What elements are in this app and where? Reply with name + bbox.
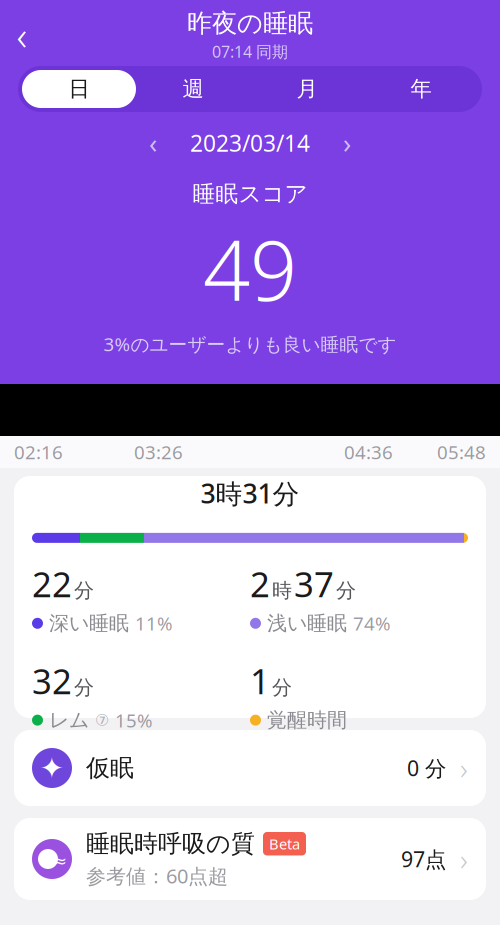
staticText: 浅い睡眠 xyxy=(267,611,347,636)
button[interactable]: ≈ xyxy=(14,818,486,900)
staticText: レム xyxy=(49,708,89,732)
staticText: 睡眠スコア xyxy=(192,180,307,208)
staticText: 深い睡眠 xyxy=(49,611,129,636)
staticText: 時 xyxy=(272,578,292,603)
staticText: 02:16 xyxy=(14,440,63,464)
staticText: 分 xyxy=(74,675,94,700)
staticText: 睡眠時呼吸の質 xyxy=(86,829,255,858)
staticText: › xyxy=(460,748,468,787)
staticText: ‹ xyxy=(149,125,157,161)
staticText: 年 xyxy=(410,76,431,102)
staticText: 3時31分 xyxy=(200,475,299,511)
staticText: ‹ xyxy=(16,8,27,61)
staticText: 分 xyxy=(336,578,356,603)
button[interactable]: 前の日 xyxy=(136,126,170,160)
staticText: › xyxy=(343,125,351,161)
button[interactable]: 月 xyxy=(250,70,364,108)
staticText: 03:26 xyxy=(134,440,183,464)
staticText: 05:48 xyxy=(437,440,486,464)
staticText: ⑦ xyxy=(95,711,109,729)
staticText: 日 xyxy=(68,76,89,102)
button[interactable]: 次の日 xyxy=(330,126,364,160)
staticText: 覚醒時間 xyxy=(267,708,347,732)
staticText: 月 xyxy=(296,76,317,102)
staticText: 2023/03/14 xyxy=(190,128,310,158)
staticText: 49 xyxy=(203,214,297,324)
staticText: 分 xyxy=(272,675,292,700)
staticText: 仮眠 xyxy=(86,753,134,783)
button[interactable]: 年 xyxy=(364,70,478,108)
staticText: Beta xyxy=(269,834,300,853)
button[interactable]: ✦ xyxy=(14,730,486,806)
staticText: 97点 xyxy=(401,845,446,873)
staticText: 参考値：60点超 xyxy=(86,862,228,889)
staticText: 07:14 同期 xyxy=(212,41,288,62)
staticText: 32 xyxy=(32,658,72,704)
staticText: › xyxy=(460,839,468,878)
button[interactable]: 戻る xyxy=(0,13,44,57)
staticText: ✦ xyxy=(39,751,64,785)
staticText: 2 xyxy=(250,561,270,607)
staticText: 37 xyxy=(294,561,334,607)
staticText: 11% xyxy=(135,611,173,636)
staticText: 15% xyxy=(115,708,153,732)
staticText: 22 xyxy=(32,561,72,607)
staticText: 週 xyxy=(182,76,203,102)
staticText: 0 分 xyxy=(407,754,446,782)
staticText: 昨夜の睡眠 xyxy=(187,8,313,39)
staticText: 74% xyxy=(353,611,391,636)
button[interactable]: 週 xyxy=(136,70,250,108)
staticText: 分 xyxy=(74,578,94,603)
staticText: ≈ xyxy=(52,851,67,871)
staticText: 3%のユーザーよりも良い睡眠です xyxy=(103,332,396,356)
button[interactable]: 日 xyxy=(22,70,136,108)
staticText: 1 xyxy=(250,658,270,704)
staticText: 04:36 xyxy=(344,440,393,464)
